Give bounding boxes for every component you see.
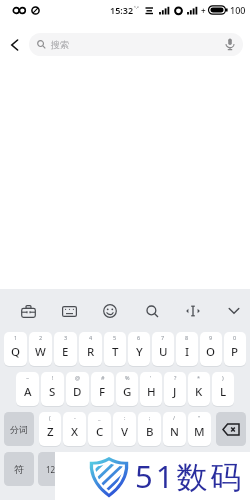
button[interactable] [98, 299, 122, 323]
staticText: 51数码 [135, 455, 245, 497]
button[interactable]: ( [39, 412, 61, 446]
staticText: 符 [14, 463, 24, 476]
staticText: _ [98, 414, 101, 421]
button[interactable]: % [116, 372, 138, 406]
staticText: ' [150, 374, 152, 381]
button[interactable]: 6 [128, 332, 150, 366]
button[interactable] [216, 412, 246, 446]
staticText: D [73, 384, 82, 400]
staticText: % [125, 374, 130, 381]
staticText: ( [49, 414, 51, 421]
button[interactable]: " [188, 412, 211, 446]
staticText: P [231, 344, 239, 360]
button[interactable]: 9 [200, 332, 222, 366]
staticText: V [121, 424, 129, 440]
staticText: L [220, 384, 227, 400]
staticText: C [96, 424, 104, 440]
staticText: Y [136, 344, 143, 360]
staticText: @ [75, 374, 80, 381]
staticText: / [173, 414, 176, 421]
button[interactable]: - [63, 412, 86, 446]
staticText: 6 [137, 334, 141, 341]
staticText: N [170, 424, 179, 440]
staticText: E [62, 344, 69, 360]
button[interactable]: 7 [152, 332, 174, 366]
staticText: 分词 [10, 424, 28, 435]
button[interactable] [222, 299, 246, 323]
staticText: ! [52, 374, 54, 381]
staticText: M [194, 424, 205, 440]
staticText: + [201, 5, 206, 16]
staticText: 9 [209, 334, 213, 341]
staticText: * [197, 374, 201, 381]
button[interactable]: 4 [79, 332, 102, 366]
staticText: T [112, 344, 119, 360]
staticText: 2 [39, 334, 43, 341]
button[interactable]: # [91, 372, 114, 406]
button[interactable]: 搜索 [29, 33, 243, 56]
button[interactable]: 3 [54, 332, 77, 366]
button[interactable]: ) [212, 372, 234, 406]
button[interactable] [181, 299, 205, 323]
staticText: I [185, 344, 190, 360]
staticText: : [124, 414, 126, 421]
button[interactable]: 123 [38, 452, 68, 486]
staticText: 7 [161, 334, 165, 341]
staticText: J [173, 384, 177, 400]
staticText: R [87, 344, 95, 360]
button[interactable]: ' [140, 372, 162, 406]
staticText: 4 [89, 334, 93, 341]
staticText: G [123, 384, 132, 400]
staticText: ~ [26, 374, 30, 381]
staticText: 0 [233, 334, 237, 341]
staticText: Q [11, 344, 21, 360]
staticText: ; [149, 414, 151, 421]
button[interactable] [57, 299, 81, 323]
button[interactable]: / [163, 412, 186, 446]
staticText: ? [174, 374, 177, 381]
staticText: ) [222, 374, 224, 381]
staticText: 15:32 [110, 4, 134, 16]
staticText: U [159, 344, 168, 360]
staticText: B [146, 424, 154, 440]
button[interactable]: 5 [104, 332, 126, 366]
staticText: Z [47, 424, 54, 440]
staticText: W [35, 344, 46, 360]
staticText: F [99, 384, 106, 400]
staticText: A [24, 384, 32, 400]
button[interactable]: 1 [4, 332, 27, 366]
staticText: O [206, 344, 216, 360]
button[interactable]: 8 [176, 332, 198, 366]
button[interactable] [16, 299, 40, 323]
staticText: # [101, 374, 105, 381]
staticText: 5 [113, 334, 117, 341]
staticText: 3 [64, 334, 68, 341]
button[interactable] [10, 39, 19, 51]
staticText: - [74, 414, 76, 421]
staticText: K [195, 384, 203, 400]
button[interactable] [216, 452, 246, 486]
button[interactable]: : [113, 412, 136, 446]
button[interactable]: 0 [224, 332, 246, 366]
staticText: 8 [185, 334, 189, 341]
button[interactable]: 符 [4, 452, 34, 486]
staticText: H [147, 384, 156, 400]
button[interactable] [72, 452, 212, 486]
staticText: 搜索 [51, 39, 69, 50]
staticText: X [71, 424, 79, 440]
staticText: 100 [230, 4, 246, 16]
button[interactable]: 2 [29, 332, 52, 366]
button[interactable]: ? [164, 372, 186, 406]
button[interactable]: ! [41, 372, 64, 406]
staticText: " [198, 414, 201, 421]
staticText: S [49, 384, 56, 400]
staticText: 123 [46, 464, 60, 475]
button[interactable] [140, 299, 164, 323]
button[interactable]: ~ [16, 372, 39, 406]
staticText: ¹·² [134, 5, 139, 12]
button[interactable]: ; [138, 412, 161, 446]
button[interactable]: 分词 [4, 412, 34, 446]
button[interactable]: _ [88, 412, 111, 446]
button[interactable]: * [188, 372, 210, 406]
button[interactable]: @ [66, 372, 89, 406]
